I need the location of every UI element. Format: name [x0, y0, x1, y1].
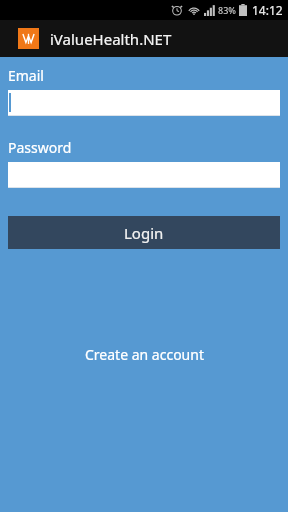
- button[interactable]: Create an account: [0, 339, 288, 369]
- staticText: iValueHealth.NET: [50, 29, 172, 49]
- staticText: Create an account: [85, 345, 204, 364]
- button[interactable]: Login: [8, 216, 280, 249]
- staticText: Login: [124, 223, 164, 243]
- button[interactable]: [8, 162, 280, 188]
- staticText: 14:12: [252, 2, 283, 18]
- staticText: Password: [8, 138, 72, 157]
- other: iValueHealth logo: [18, 28, 39, 49]
- staticText: Email: [8, 66, 44, 85]
- button[interactable]: [8, 90, 280, 116]
- staticText: 83%: [218, 4, 236, 16]
